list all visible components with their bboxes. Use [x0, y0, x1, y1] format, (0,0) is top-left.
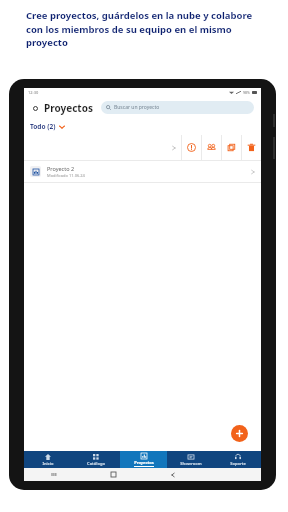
staticText: 98% [243, 90, 250, 95]
button[interactable]: Recientes [24, 468, 84, 481]
button[interactable]: Proyectos [120, 451, 167, 468]
staticText: Proyectos [44, 101, 93, 115]
staticText: Showroom [180, 461, 202, 466]
staticText: Soporte [230, 461, 246, 466]
button[interactable]: Expandir [167, 135, 181, 160]
button[interactable]: Inicio [24, 451, 72, 468]
staticText: Cree proyectos, guárdelos en la nube y c… [26, 9, 270, 48]
button[interactable]: Nuevo proyecto [231, 425, 248, 442]
staticText: Modificado 11.06.24 [47, 173, 85, 178]
button[interactable]: Duplicar [222, 135, 241, 160]
button[interactable]: Compartir [202, 135, 221, 160]
button[interactable]: Ajustes [30, 103, 40, 113]
button[interactable]: Todo (2) [30, 118, 261, 135]
button[interactable]: Atrás [143, 468, 202, 481]
button[interactable]: Información [182, 135, 201, 160]
staticText: Catálogo [87, 461, 105, 466]
staticText: Buscar un proyecto [114, 104, 160, 111]
button[interactable]: Catálogo [72, 451, 120, 468]
staticText: Todo (2) [30, 122, 56, 131]
button[interactable]: Inicio [84, 468, 143, 481]
button[interactable]: Proyecto 2 [24, 161, 261, 182]
button[interactable]: Eliminar [242, 135, 261, 160]
button[interactable]: Buscar un proyecto [101, 101, 254, 114]
staticText: Proyectos [134, 460, 154, 465]
staticText: Proyecto 2 [47, 165, 75, 172]
staticText: Inicio [42, 461, 54, 466]
button[interactable]: Showroom [167, 451, 214, 468]
staticText: 12:30 [28, 90, 39, 95]
button[interactable]: Soporte [214, 451, 261, 468]
